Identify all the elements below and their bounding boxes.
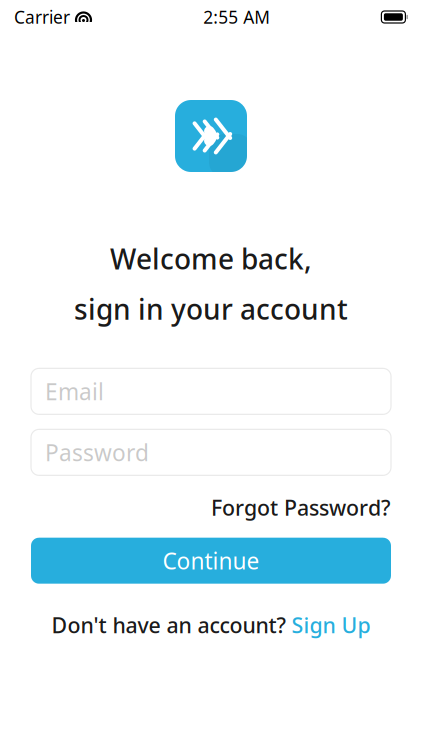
staticText: Sign Up — [291, 611, 370, 639]
staticText: Don't have an account? — [51, 611, 286, 639]
button[interactable]: Don't have an account? — [51, 611, 370, 639]
staticText: sign in your account — [74, 290, 348, 327]
button[interactable]: Email — [31, 368, 391, 414]
button[interactable]: Password — [31, 429, 391, 475]
staticText: 2:55 AM — [203, 5, 270, 28]
button[interactable]: Forgot Password? — [211, 489, 391, 526]
staticText: Welcome back, — [110, 240, 312, 277]
staticText: Forgot Password? — [211, 493, 391, 522]
staticText: Email — [45, 376, 104, 406]
button[interactable]: Continue — [31, 538, 391, 584]
staticText: Carrier — [14, 5, 70, 28]
staticText: Password — [45, 437, 149, 467]
staticText: Continue — [162, 546, 259, 576]
